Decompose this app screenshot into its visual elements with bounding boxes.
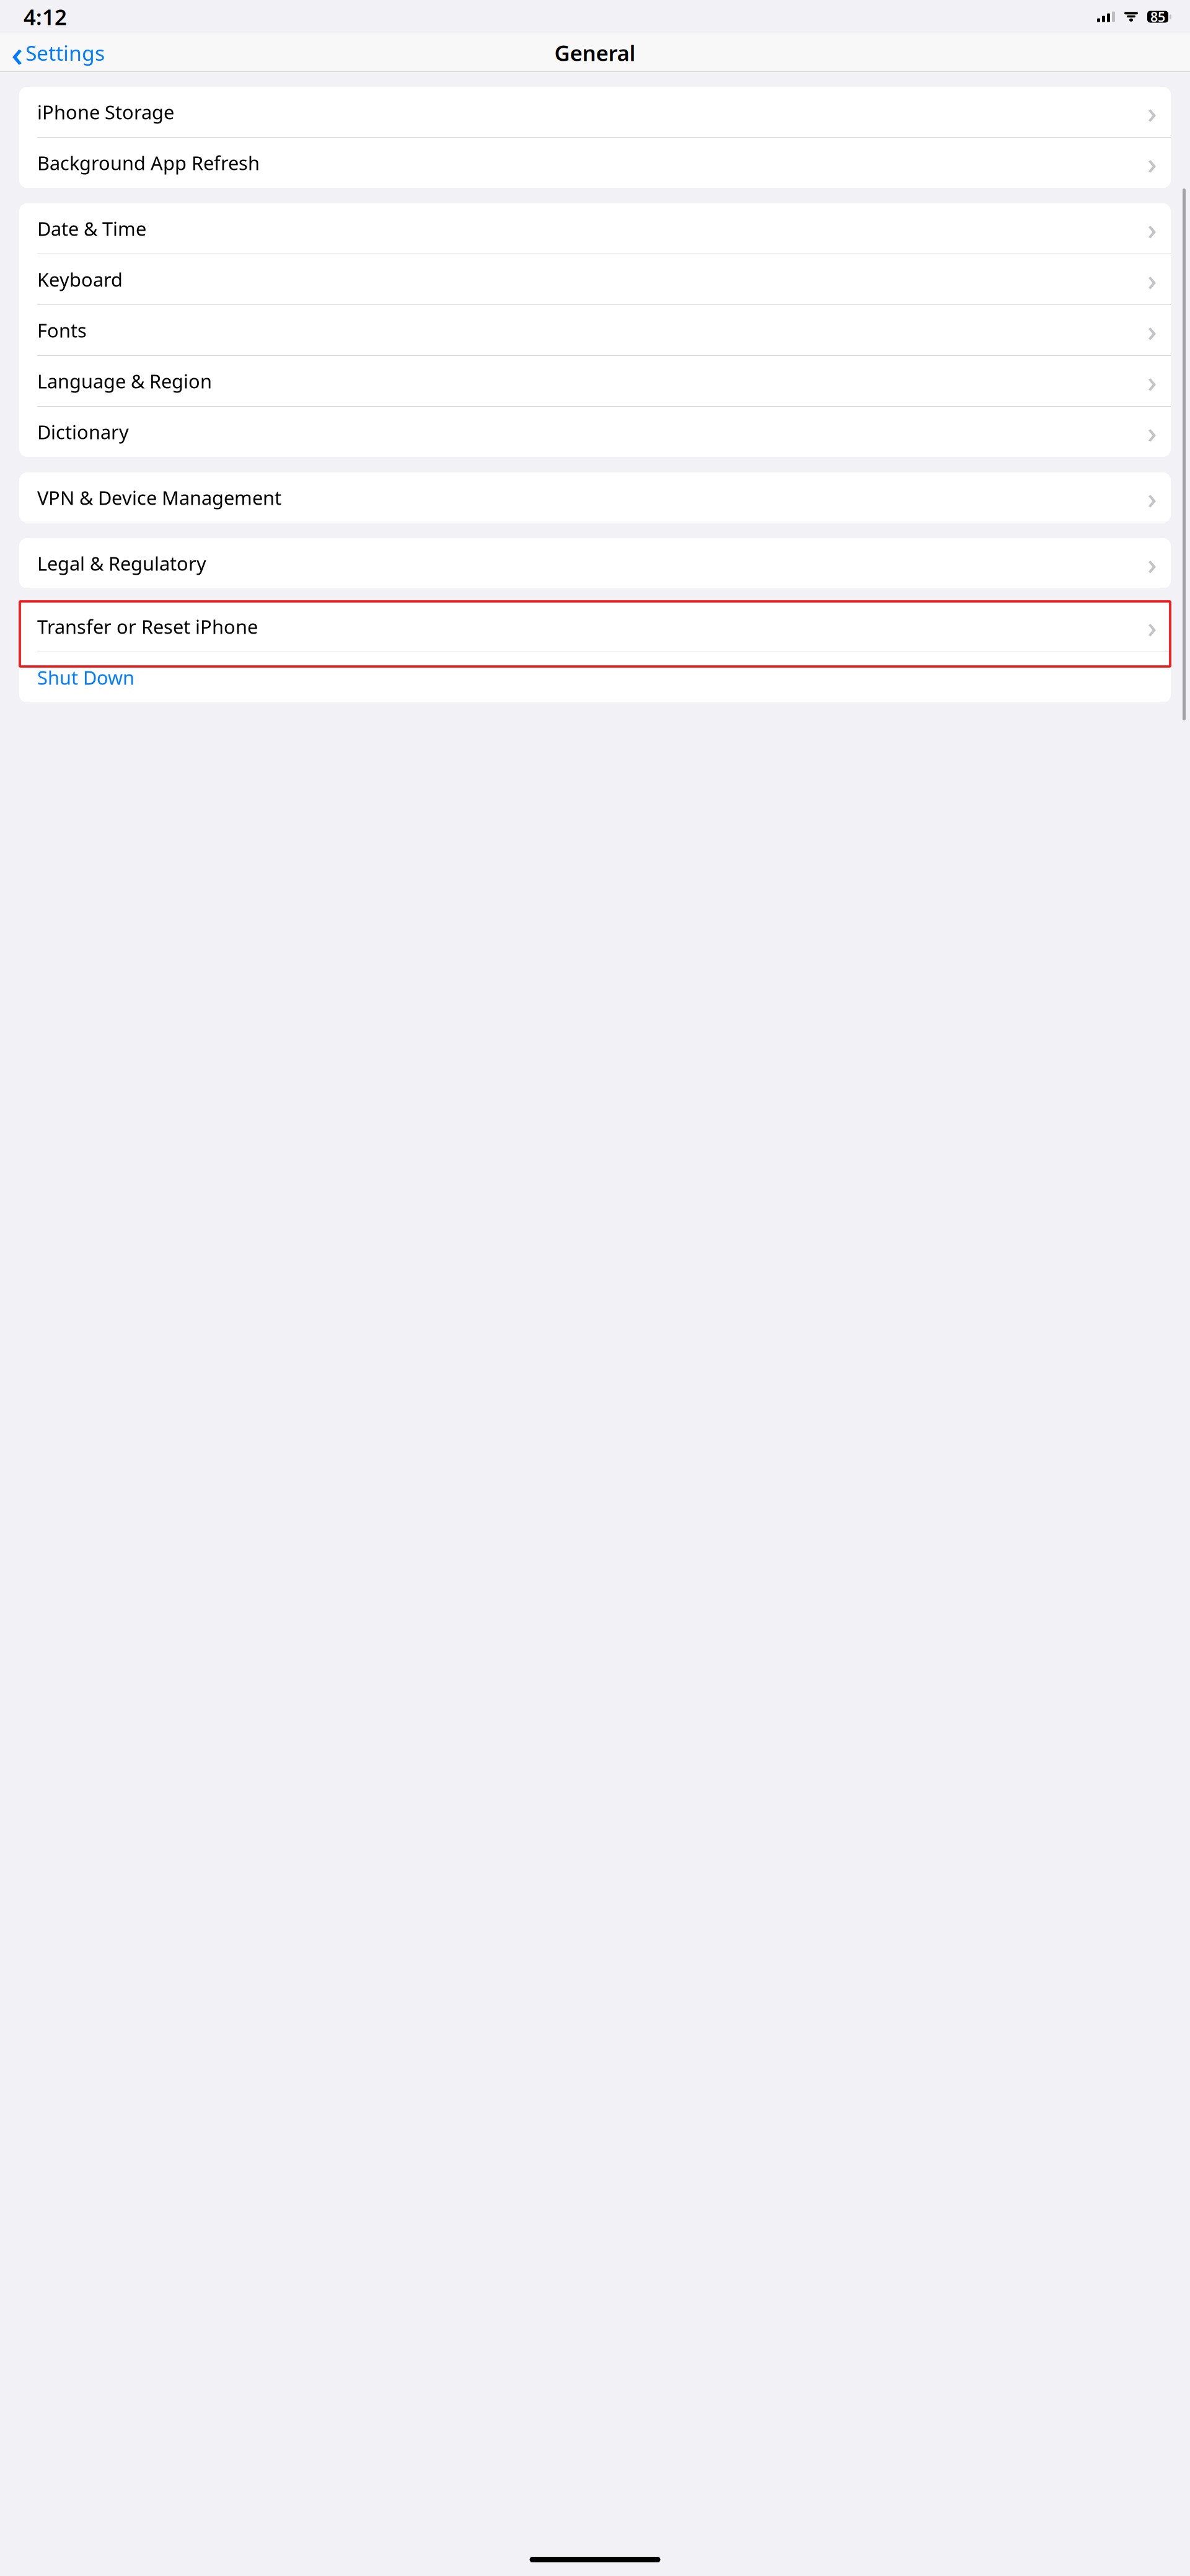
staticText: General (554, 38, 636, 67)
staticText: › (1147, 92, 1157, 132)
staticText: › (1147, 143, 1157, 182)
staticText: ‹ (11, 29, 23, 77)
button[interactable]: Date & Time (19, 203, 1171, 254)
button[interactable]: Shut Down (19, 652, 1171, 702)
staticText: Transfer or Reset iPhone (37, 614, 258, 639)
button[interactable]: Background App Refresh (19, 138, 1171, 188)
staticText: Language & Region (37, 368, 212, 394)
staticText: VPN & Device Management (37, 485, 281, 510)
button[interactable]: iPhone Storage (19, 87, 1171, 137)
button[interactable]: Keyboard (19, 254, 1171, 304)
button[interactable]: VPN & Device Management (19, 472, 1171, 523)
button[interactable]: ‹ (0, 25, 105, 81)
staticText: Settings (25, 39, 105, 66)
staticText: iPhone Storage (37, 99, 174, 124)
staticText: › (1147, 412, 1157, 452)
button[interactable]: Language & Region (19, 356, 1171, 406)
staticText: Legal & Regulatory (37, 551, 206, 576)
staticText: 4:12 (24, 2, 67, 31)
staticText: Background App Refresh (37, 150, 260, 175)
staticText: › (1147, 310, 1157, 350)
button[interactable]: Dictionary (19, 407, 1171, 457)
staticText: Date & Time (37, 216, 146, 241)
staticText: › (1147, 543, 1157, 583)
staticText: › (1147, 361, 1157, 401)
button[interactable]: Legal & Regulatory (19, 538, 1171, 588)
staticText: Fonts (37, 317, 87, 343)
button[interactable]: Fonts (19, 305, 1171, 355)
staticText: Shut Down (37, 665, 134, 690)
staticText: 85 (1150, 8, 1165, 25)
staticText: › (1147, 260, 1157, 299)
staticText: Dictionary (37, 419, 129, 444)
staticText: Keyboard (37, 267, 123, 292)
button[interactable]: Transfer or Reset iPhone (19, 601, 1171, 652)
staticText: › (1147, 607, 1157, 646)
staticText: › (1147, 209, 1157, 248)
staticText: › (1147, 478, 1157, 517)
